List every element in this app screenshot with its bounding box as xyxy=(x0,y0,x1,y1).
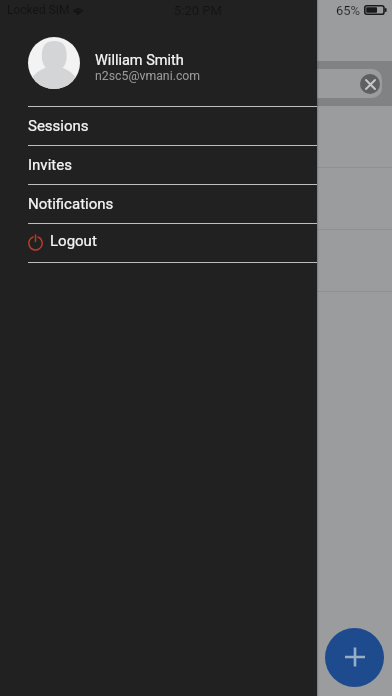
staticText: n2sc5@vmani.com xyxy=(95,69,201,83)
staticText: Locked SIM xyxy=(7,3,70,17)
staticText: 65% xyxy=(336,3,361,18)
button[interactable]: Clear xyxy=(360,74,380,94)
button[interactable]: Add xyxy=(325,628,384,687)
button[interactable]: Clear xyxy=(10,69,382,98)
button[interactable]: Logout xyxy=(0,224,317,262)
button[interactable]: Invites xyxy=(0,146,317,184)
staticText: William Smith xyxy=(95,52,184,69)
button[interactable]: Sessions xyxy=(0,107,317,145)
staticText: Notifications xyxy=(28,195,114,213)
staticText: Invites xyxy=(28,156,72,174)
button[interactable] xyxy=(0,230,392,292)
button[interactable] xyxy=(0,168,392,230)
button[interactable]: Notifications xyxy=(0,185,317,223)
button[interactable]: William Smith xyxy=(0,20,317,106)
staticText: Sessions xyxy=(28,117,89,135)
button[interactable] xyxy=(0,106,392,168)
staticText: 5:20 PM xyxy=(174,3,222,18)
staticText: Logout xyxy=(50,232,97,250)
